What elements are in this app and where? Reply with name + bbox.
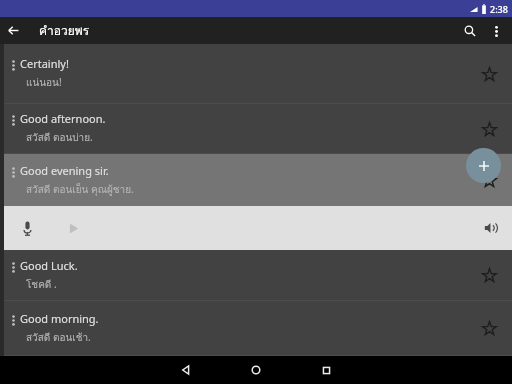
staticText: สวัสดี ตอนเช้า.: [26, 330, 91, 346]
button[interactable]: Favorite: [470, 256, 508, 294]
button[interactable]: Reorder: [0, 250, 512, 300]
staticText: 2:38: [490, 3, 508, 15]
button[interactable]: Reorder: [0, 154, 512, 206]
staticText: แน่นอน!: [26, 75, 62, 91]
button[interactable]: Search: [456, 17, 484, 44]
staticText: สวัสดี ตอนบ่าย.: [26, 130, 93, 146]
staticText: Good evening sir.: [20, 163, 109, 178]
button[interactable]: Reorder: [6, 104, 20, 153]
staticText: Good Luck.: [20, 258, 78, 273]
button[interactable]: Reorder: [6, 154, 20, 206]
staticText: Certainly!: [20, 56, 69, 71]
button[interactable]: Favorite: [470, 161, 508, 199]
button[interactable]: Favorite: [470, 110, 508, 148]
button[interactable]: Reorder: [6, 250, 20, 300]
button[interactable]: Reorder: [6, 44, 20, 103]
button[interactable]: Play: [60, 215, 86, 241]
button[interactable]: Recent apps: [291, 356, 361, 384]
button[interactable]: Favorite: [470, 309, 508, 347]
button[interactable]: Back: [0, 17, 27, 44]
button[interactable]: Speak: [474, 211, 508, 245]
button[interactable]: More options: [484, 19, 508, 43]
button[interactable]: Reorder: [6, 301, 20, 355]
button[interactable]: Add phrase: [466, 148, 501, 183]
button[interactable]: Favorite: [470, 55, 508, 93]
staticText: โชคดี .: [26, 277, 57, 293]
button[interactable]: Back: [151, 356, 221, 384]
button[interactable]: Reorder: [0, 44, 512, 103]
button[interactable]: Reorder: [0, 301, 512, 355]
button[interactable]: Record: [13, 214, 41, 242]
staticText: Good morning.: [20, 311, 99, 326]
staticText: คำอวยพร: [39, 21, 90, 40]
button[interactable]: Reorder: [0, 104, 512, 153]
button[interactable]: Home: [221, 356, 291, 384]
staticText: Good afternoon.: [20, 111, 106, 126]
staticText: สวัสดี ตอนเย็น คุณผู้ชาย.: [26, 182, 134, 198]
